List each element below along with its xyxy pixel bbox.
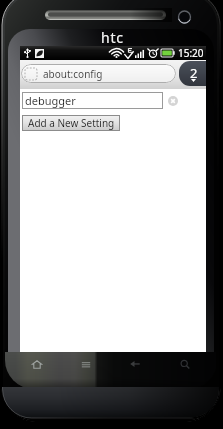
staticText: about:config — [43, 67, 103, 81]
button[interactable]: Add a New Setting — [22, 115, 120, 131]
button[interactable]: Back — [110, 356, 160, 373]
button[interactable]: Clear text — [168, 96, 178, 106]
button[interactable]: Search — [160, 356, 210, 373]
button[interactable]: Tabs — [179, 61, 206, 86]
staticText: htc — [101, 28, 124, 47]
staticText: debugger — [25, 93, 76, 108]
button[interactable]: debugger — [22, 92, 163, 109]
staticText: 2 — [190, 64, 198, 82]
button[interactable]: Home — [12, 356, 61, 373]
staticText: 15:20 — [178, 46, 204, 60]
staticText: Add a New Setting — [28, 116, 115, 130]
button[interactable]: about:config — [21, 64, 176, 83]
button[interactable]: Menu — [61, 356, 110, 373]
